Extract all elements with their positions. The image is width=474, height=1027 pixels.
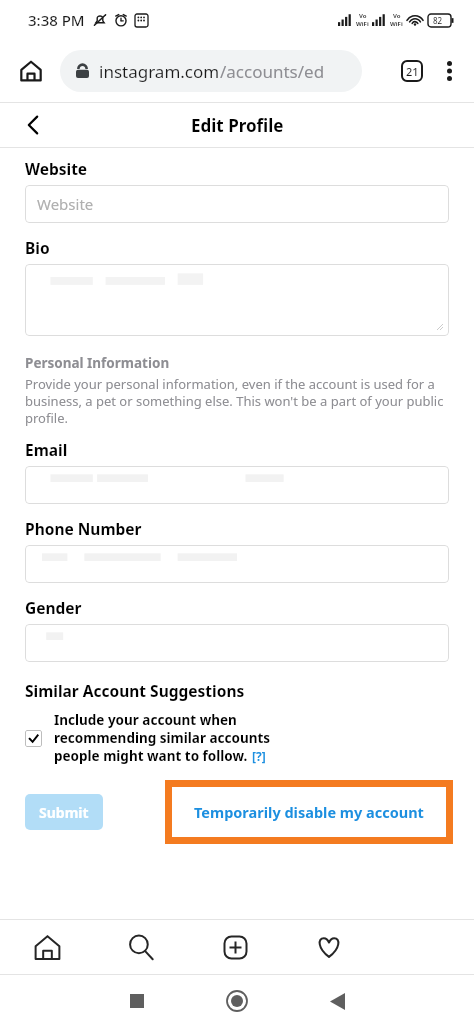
staticText: Gender: [25, 597, 82, 618]
staticText: /accounts/ed: [220, 60, 325, 83]
button[interactable]: [25, 466, 449, 504]
button[interactable]: Recent apps: [117, 981, 157, 1021]
button[interactable]: Home: [217, 981, 257, 1021]
button[interactable]: Temporarily disable my account: [172, 787, 446, 837]
staticText: [?]: [252, 748, 266, 764]
staticText: Submit: [39, 803, 89, 822]
button[interactable]: Activity: [282, 920, 376, 974]
staticText: instagram.com: [99, 60, 220, 83]
staticText: Email: [25, 439, 68, 460]
staticText: 82: [433, 15, 443, 26]
staticText: 3:38 PM: [28, 10, 85, 30]
button[interactable]: [25, 264, 449, 336]
button[interactable]: instagram.com: [60, 50, 362, 92]
staticText: recommending similar accounts: [54, 729, 271, 747]
staticText: Website: [37, 194, 94, 214]
button[interactable]: Home: [0, 920, 94, 974]
staticText: Provide your personal information, even …: [25, 375, 449, 427]
button[interactable]: Home: [14, 54, 48, 88]
staticText: Temporarily disable my account: [194, 802, 424, 822]
staticText: Phone Number: [25, 518, 142, 539]
button[interactable]: Submit: [25, 794, 103, 830]
button[interactable]: Create: [188, 920, 282, 974]
button[interactable]: Back: [16, 108, 50, 142]
staticText: Personal Information: [25, 354, 170, 372]
button[interactable]: Include your account when: [25, 711, 449, 765]
staticText: Vo: [359, 12, 367, 20]
button[interactable]: [25, 545, 449, 583]
staticText: Website: [25, 158, 88, 179]
button[interactable]: More options: [434, 56, 464, 86]
button[interactable]: Tabs: 21: [396, 55, 428, 87]
staticText: WiFi: [390, 20, 403, 28]
button[interactable]: [?]: [252, 748, 266, 764]
staticText: Vo: [393, 12, 401, 20]
staticText: Bio: [25, 237, 50, 258]
button[interactable]: Website: [25, 185, 449, 223]
staticText: WiFi: [356, 20, 369, 28]
staticText: 21: [406, 64, 419, 79]
button[interactable]: Search: [94, 920, 188, 974]
button[interactable]: [25, 624, 449, 662]
staticText: Similar Account Suggestions: [25, 680, 245, 701]
staticText: Edit Profile: [191, 114, 284, 137]
staticText: Include your account when: [54, 711, 237, 729]
button[interactable]: Back: [317, 981, 357, 1021]
staticText: people might want to follow.: [54, 747, 248, 765]
